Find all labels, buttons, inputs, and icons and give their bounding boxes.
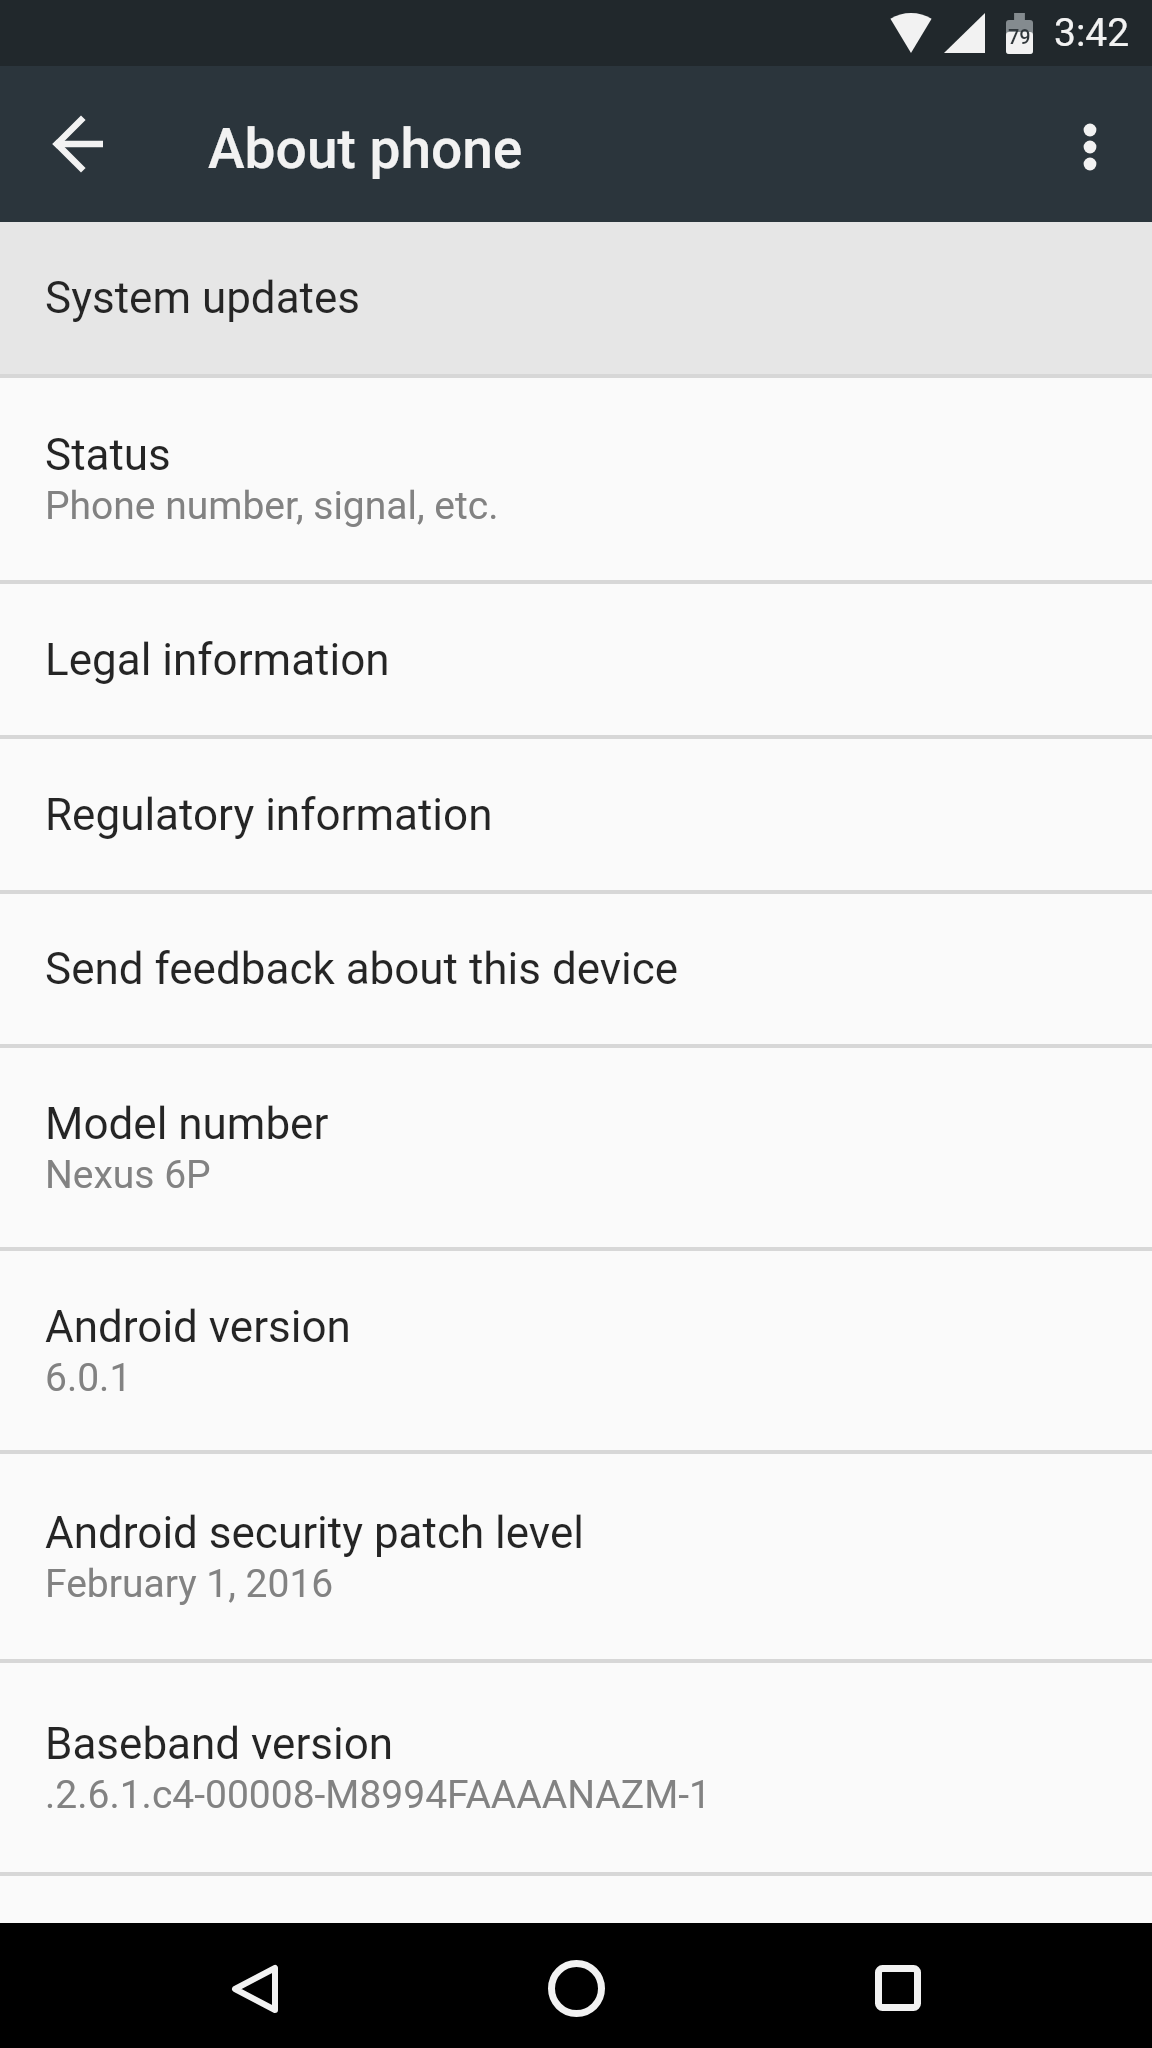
- button[interactable]: Legal information: [0, 584, 1152, 735]
- button[interactable]: [48, 112, 112, 176]
- staticText: About phone: [208, 117, 523, 181]
- staticText: .2.6.1.c4-00008-M8994FAAAANAZM-1: [45, 1772, 711, 1818]
- staticText: 3:42: [1054, 10, 1130, 56]
- button[interactable]: Android security patch level: [0, 1454, 1152, 1659]
- staticText: Status: [45, 429, 171, 481]
- staticText: Model number: [45, 1098, 329, 1150]
- staticText: Android security patch level: [45, 1507, 584, 1559]
- button[interactable]: [215, 1946, 295, 2026]
- button[interactable]: [1062, 116, 1118, 172]
- button[interactable]: Baseband version: [0, 1663, 1152, 1872]
- button[interactable]: Android version: [0, 1251, 1152, 1450]
- staticText: Regulatory information: [45, 789, 493, 841]
- staticText: Phone number, signal, etc.: [45, 483, 499, 529]
- button[interactable]: System updates: [0, 222, 1152, 374]
- button[interactable]: Model number: [0, 1048, 1152, 1247]
- button[interactable]: [536, 1946, 616, 2026]
- button[interactable]: Send feedback about this device: [0, 894, 1152, 1044]
- staticText: Send feedback about this device: [45, 943, 679, 995]
- staticText: Legal information: [45, 634, 390, 686]
- staticText: 6.0.1: [45, 1355, 132, 1401]
- staticText: February 1, 2016: [45, 1561, 334, 1607]
- button[interactable]: Regulatory information: [0, 739, 1152, 890]
- staticText: Baseband version: [45, 1718, 394, 1770]
- staticText: Android version: [45, 1301, 351, 1353]
- button[interactable]: [858, 1946, 938, 2026]
- staticText: 79: [1008, 25, 1031, 48]
- staticText: Nexus 6P: [45, 1152, 211, 1198]
- button[interactable]: Status: [0, 378, 1152, 580]
- staticText: System updates: [45, 272, 361, 324]
